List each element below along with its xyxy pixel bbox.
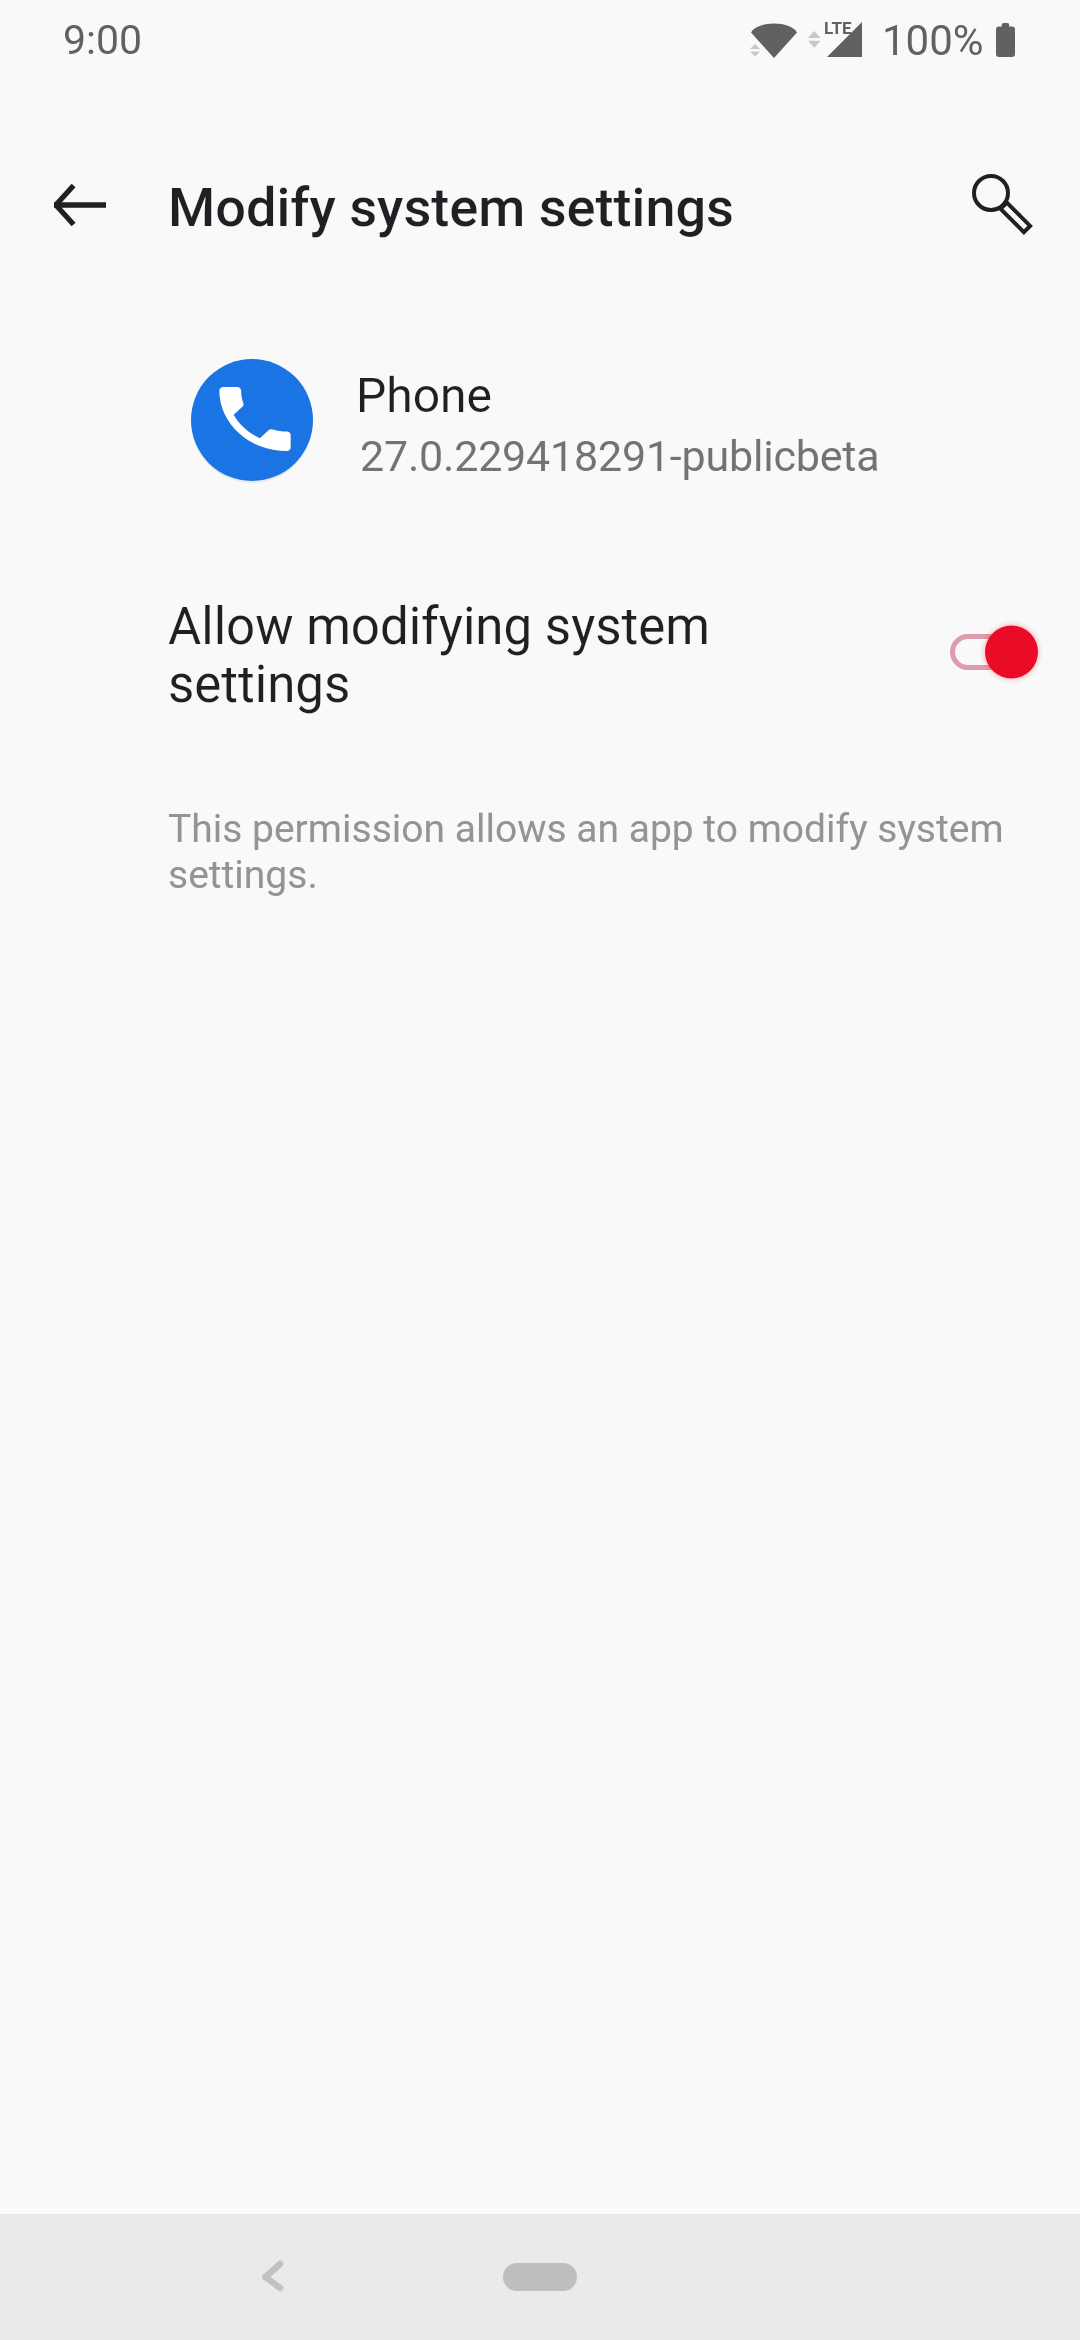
button[interactable]: Home bbox=[503, 2263, 577, 2291]
button[interactable]: Back bbox=[242, 2243, 304, 2305]
staticText: LTE bbox=[824, 18, 852, 38]
staticText: 9:00 bbox=[63, 16, 143, 64]
button[interactable]: Navigate up bbox=[34, 165, 114, 245]
staticText: 27.0.229418291-publicbeta bbox=[360, 431, 880, 481]
staticText: 100% bbox=[882, 16, 984, 65]
button[interactable]: Allow modifying system settings bbox=[0, 576, 1080, 754]
staticText: This permission allows an app to modify … bbox=[168, 806, 1068, 898]
staticText: Allow modifying system settings bbox=[168, 597, 788, 714]
staticText: Phone bbox=[356, 367, 493, 423]
button[interactable]: Search bbox=[955, 157, 1047, 249]
staticText: Modify system settings bbox=[168, 176, 734, 239]
